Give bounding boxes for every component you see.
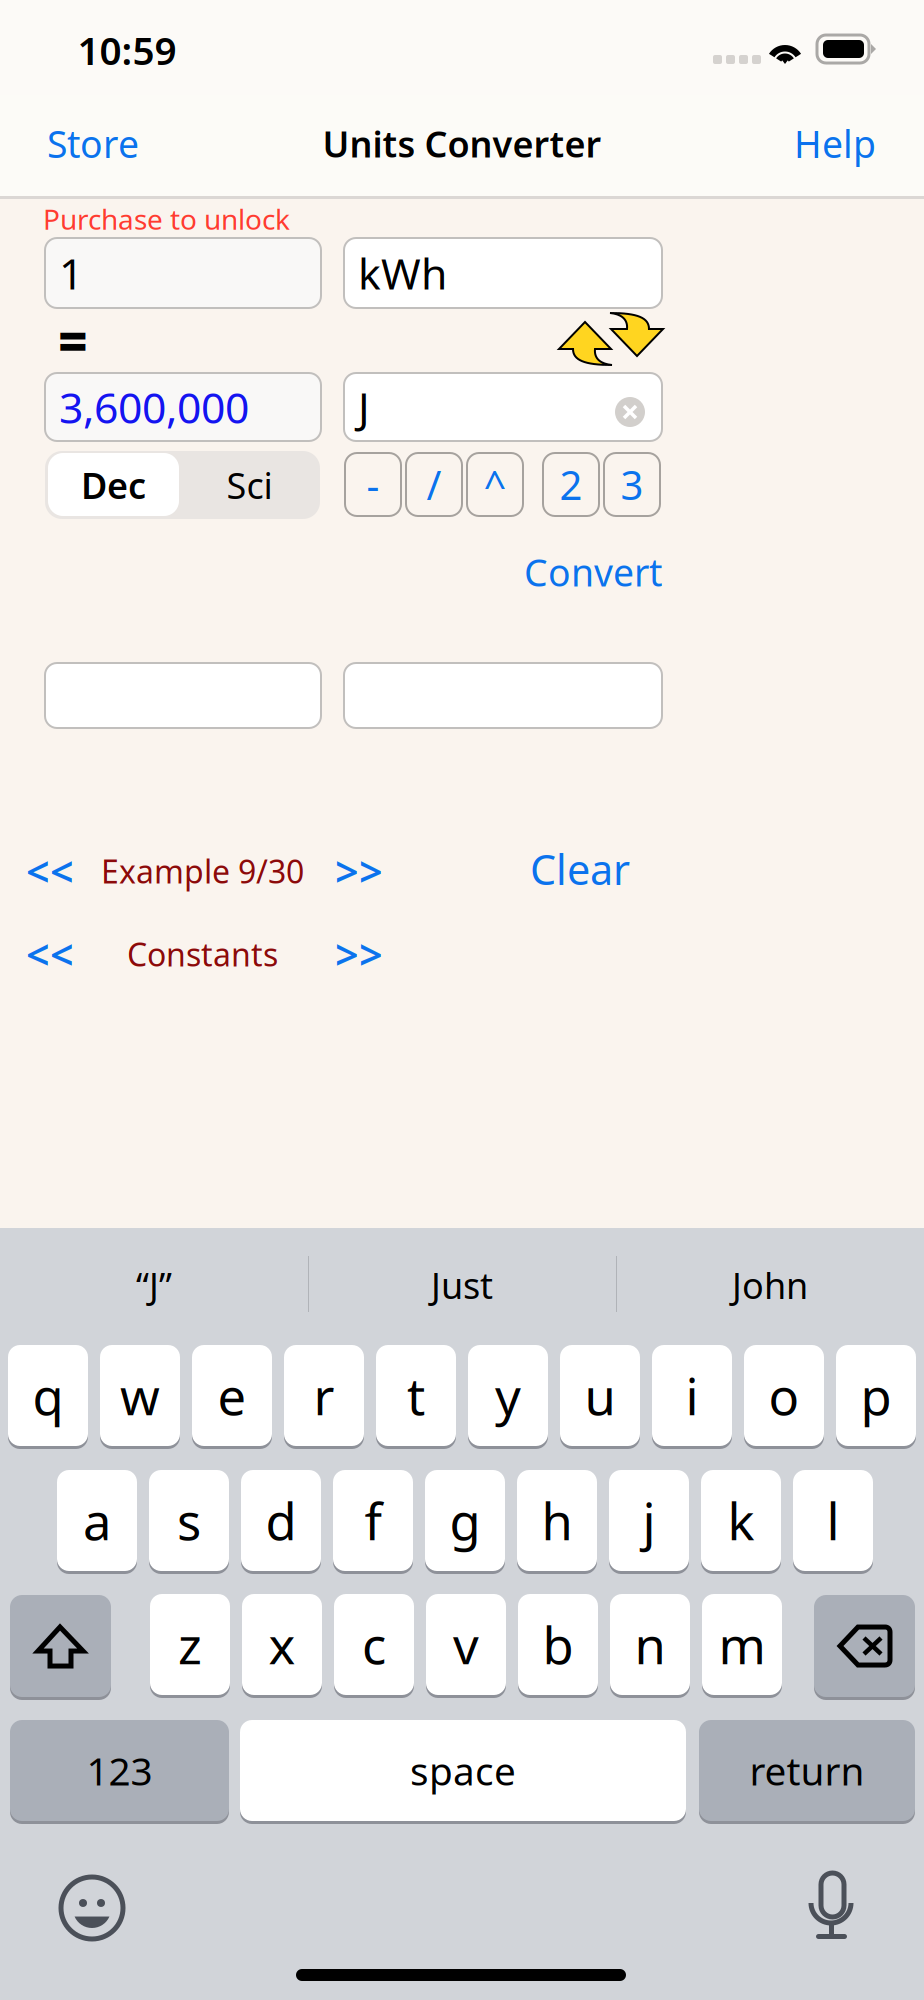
button[interactable]: n	[610, 1594, 690, 1698]
staticText: t	[407, 1362, 425, 1429]
staticText: y	[495, 1362, 521, 1429]
button[interactable]: z	[150, 1594, 230, 1698]
button[interactable]: return	[699, 1720, 915, 1824]
staticText: <<	[26, 927, 74, 981]
button[interactable]: o	[744, 1345, 824, 1449]
staticText: -	[366, 458, 379, 511]
button[interactable]: u	[560, 1345, 640, 1449]
button[interactable]: <<	[20, 934, 80, 974]
button[interactable]	[45, 663, 321, 728]
staticText: s	[177, 1487, 201, 1554]
staticText: f	[364, 1487, 381, 1554]
button[interactable]: Sci	[184, 451, 315, 519]
button[interactable]: q	[8, 1345, 88, 1449]
button[interactable]: Convert	[493, 547, 693, 597]
staticText: John	[732, 1261, 808, 1309]
button[interactable]: >>	[329, 851, 389, 891]
staticText: Dec	[81, 461, 146, 509]
button[interactable]: b	[518, 1594, 598, 1698]
button[interactable]: s	[149, 1470, 229, 1574]
staticText: w	[120, 1362, 160, 1429]
staticText: Store	[47, 119, 139, 168]
button[interactable]: Store	[8, 95, 178, 192]
button[interactable]: k	[701, 1470, 781, 1574]
staticText: x	[268, 1611, 295, 1678]
button[interactable]: 1	[45, 238, 321, 308]
staticText: Clear	[530, 842, 630, 896]
button[interactable]: m	[702, 1594, 782, 1698]
button[interactable]: i	[652, 1345, 732, 1449]
button[interactable]: f	[333, 1470, 413, 1574]
button[interactable]: Dec	[48, 451, 179, 519]
staticText: b	[542, 1611, 573, 1678]
staticText: m	[718, 1611, 765, 1678]
staticText: J	[358, 379, 370, 435]
button[interactable]: Dictation	[808, 1871, 854, 1943]
staticText: ^	[483, 458, 506, 511]
button[interactable]: Help	[760, 95, 910, 192]
button[interactable]: e	[192, 1345, 272, 1449]
staticText: <<	[26, 844, 74, 898]
staticText: Example 9/30	[101, 850, 304, 892]
staticText: space	[410, 1745, 516, 1796]
staticText: Units Converter	[322, 120, 601, 167]
button[interactable]: w	[100, 1345, 180, 1449]
button[interactable]: h	[517, 1470, 597, 1574]
staticText: Help	[794, 119, 876, 168]
button[interactable]: space	[240, 1720, 686, 1824]
button[interactable]: -	[345, 453, 401, 516]
button[interactable]: J	[344, 373, 662, 441]
button[interactable]	[344, 663, 662, 728]
button[interactable]: x	[242, 1594, 322, 1698]
button[interactable]: p	[836, 1345, 916, 1449]
button[interactable]: a	[57, 1470, 137, 1574]
staticText: a	[83, 1487, 111, 1554]
staticText: l	[826, 1487, 839, 1554]
staticText: return	[749, 1745, 864, 1796]
button[interactable]: d	[241, 1470, 321, 1574]
button[interactable]: Clear text	[615, 397, 645, 427]
staticText: p	[860, 1362, 891, 1429]
button[interactable]: l	[793, 1470, 873, 1574]
button[interactable]: y	[468, 1345, 548, 1449]
button[interactable]: 3,600,000	[45, 373, 321, 441]
button[interactable]: ^	[467, 453, 523, 516]
button[interactable]: v	[426, 1594, 506, 1698]
staticText: z	[178, 1611, 202, 1678]
staticText: k	[727, 1487, 754, 1554]
button[interactable]: c	[334, 1594, 414, 1698]
button[interactable]: Delete	[814, 1595, 915, 1700]
button[interactable]: >>	[329, 934, 389, 974]
button[interactable]: j	[609, 1470, 689, 1574]
staticText: g	[449, 1487, 480, 1554]
staticText: r	[313, 1362, 334, 1429]
staticText: o	[768, 1362, 799, 1429]
staticText: h	[541, 1487, 572, 1554]
staticText: Convert	[524, 547, 662, 597]
staticText: >>	[335, 927, 383, 981]
staticText: q	[32, 1362, 63, 1429]
staticText: Constants	[127, 933, 278, 975]
staticText: =	[58, 306, 88, 374]
button[interactable]: 123	[10, 1720, 229, 1824]
button[interactable]: Shift	[10, 1595, 111, 1700]
staticText: kWh	[358, 245, 447, 301]
button[interactable]: g	[425, 1470, 505, 1574]
staticText: 1	[59, 245, 83, 301]
button[interactable]: Emoji keyboard	[61, 1876, 123, 1940]
button[interactable]: r	[284, 1345, 364, 1449]
button[interactable]: <<	[20, 851, 80, 891]
button[interactable]: /	[406, 453, 462, 516]
staticText: j	[642, 1487, 655, 1554]
staticText: n	[634, 1611, 665, 1678]
button[interactable]: 2	[543, 453, 599, 516]
staticText: e	[217, 1362, 246, 1429]
button[interactable]: Clear	[500, 841, 660, 897]
staticText: /	[426, 458, 441, 511]
button[interactable]: 3	[604, 453, 660, 516]
staticText: Just	[431, 1261, 493, 1309]
staticText: 10:59	[77, 24, 176, 76]
staticText: u	[584, 1362, 615, 1429]
button[interactable]: t	[376, 1345, 456, 1449]
button[interactable]: kWh	[344, 238, 662, 308]
